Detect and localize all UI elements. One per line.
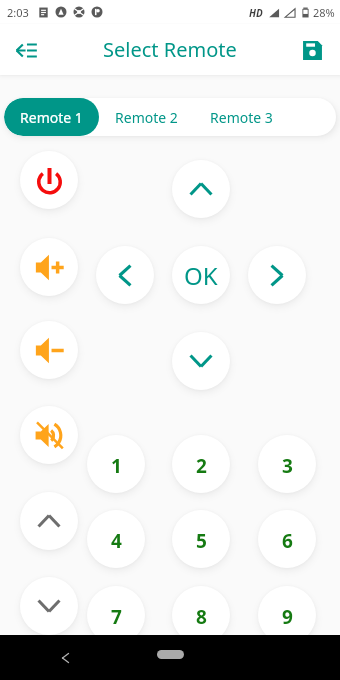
staticText: 4 <box>111 528 122 554</box>
button[interactable]: Remote 2 <box>99 98 194 136</box>
staticText: HD <box>249 6 263 20</box>
button[interactable]: Right <box>248 246 306 304</box>
button[interactable]: Home <box>157 650 184 659</box>
staticText: 8 <box>196 604 207 630</box>
button[interactable]: Save <box>292 30 332 70</box>
button[interactable]: Back <box>6 30 46 70</box>
button[interactable]: Volume down <box>20 321 78 379</box>
button[interactable]: 7 <box>87 586 145 644</box>
staticText: 2 <box>196 453 207 479</box>
button[interactable]: 1 <box>87 435 145 493</box>
button[interactable]: Down <box>172 332 230 390</box>
staticText: 7 <box>111 604 122 630</box>
button[interactable]: Volume up <box>20 238 78 296</box>
button[interactable]: 2 <box>172 435 230 493</box>
staticText: 1 <box>111 453 122 479</box>
staticText: 28% <box>313 5 335 20</box>
staticText: 2:03 <box>7 5 29 20</box>
button[interactable]: 5 <box>172 510 230 568</box>
staticText: 6 <box>282 528 293 554</box>
button[interactable]: Remote 3 <box>194 98 289 136</box>
button[interactable]: Channel down <box>20 577 78 635</box>
button[interactable]: Channel up <box>20 492 78 550</box>
button[interactable]: 8 <box>172 586 230 644</box>
staticText: 5 <box>196 528 207 554</box>
button[interactable]: Up <box>172 160 230 218</box>
staticText: Remote 1 <box>20 108 83 127</box>
staticText: Select Remote <box>103 36 237 63</box>
staticText: OK <box>184 259 218 292</box>
button[interactable]: 9 <box>258 586 316 644</box>
button[interactable]: Left <box>96 246 154 304</box>
staticText: Remote 2 <box>115 108 178 127</box>
button[interactable]: Power <box>20 151 78 209</box>
button[interactable]: OK <box>172 246 230 304</box>
button[interactable]: Remote 1 <box>4 98 99 136</box>
button[interactable]: Back <box>49 642 81 674</box>
button[interactable]: 6 <box>258 510 316 568</box>
button[interactable]: 3 <box>258 435 316 493</box>
button[interactable]: Mute <box>20 406 78 464</box>
staticText: Remote 3 <box>210 108 273 127</box>
staticText: 3 <box>282 453 293 479</box>
staticText: 9 <box>282 604 293 630</box>
button[interactable]: 4 <box>87 510 145 568</box>
